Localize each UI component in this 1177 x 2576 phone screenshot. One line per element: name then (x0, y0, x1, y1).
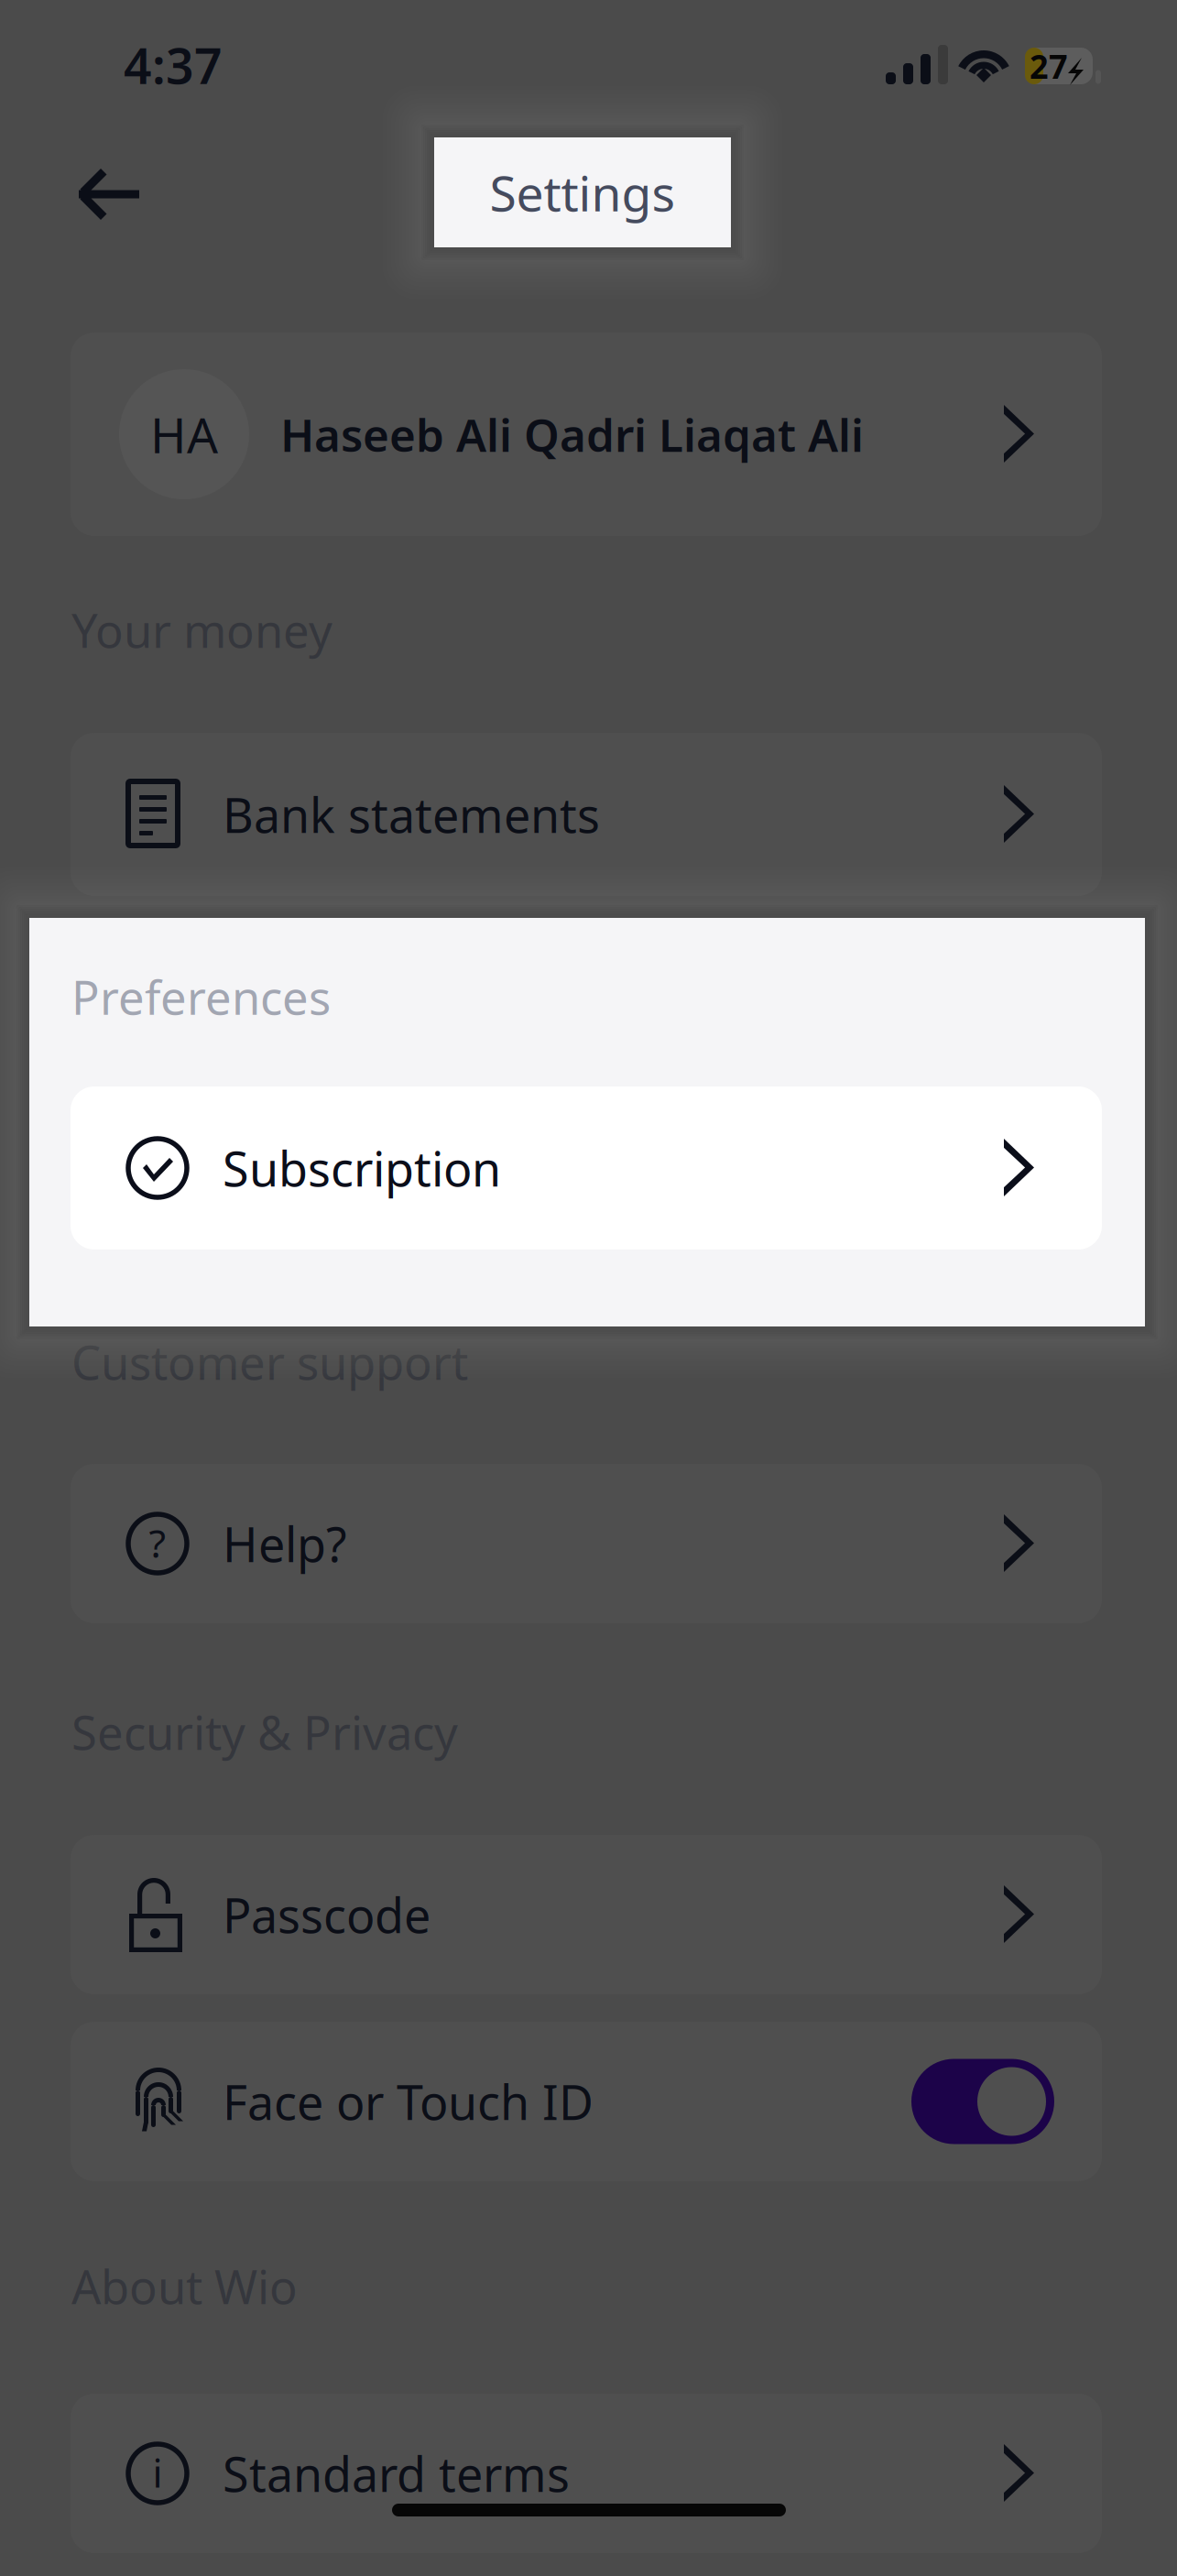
staticText: Help? (223, 1512, 347, 1575)
staticText: Face or Touch ID (223, 2070, 594, 2133)
staticText: 4:37 (124, 33, 223, 97)
button[interactable]: i (71, 2394, 1102, 2553)
staticText: ? (149, 1517, 166, 1569)
button[interactable]: Subscription (71, 1086, 1102, 1250)
staticText: Passcode (223, 1883, 430, 1946)
staticText: Preferences (71, 951, 331, 1013)
button[interactable]: HA (71, 333, 1102, 536)
button[interactable]: Back (53, 149, 165, 241)
staticText: Subscription (223, 1136, 501, 1200)
staticText: Bank statements (223, 783, 600, 846)
staticText: Settings (490, 160, 676, 225)
staticText: Your money (71, 599, 332, 661)
button[interactable]: Settings (434, 137, 731, 247)
staticText: Standard terms (223, 2442, 570, 2505)
staticText: HA (150, 402, 218, 467)
staticText: Security & Privacy (71, 1701, 458, 1763)
staticText: Subscription (223, 1136, 501, 1200)
staticText: Preferences (71, 966, 331, 1028)
button[interactable]: Face or Touch ID (71, 2022, 1102, 2181)
staticText: 27 (1030, 44, 1068, 88)
staticText: Customer support (71, 1331, 468, 1393)
staticText: i (153, 2447, 163, 2499)
button[interactable]: Subscription (71, 1086, 1102, 1250)
staticText: Haseeb Ali Qadri Liaqat Ali (280, 404, 864, 464)
button[interactable]: Passcode (71, 1835, 1102, 1994)
staticText: About Wio (71, 2255, 298, 2317)
button[interactable]: Bank statements (71, 733, 1102, 896)
button[interactable]: ? (71, 1464, 1102, 1623)
